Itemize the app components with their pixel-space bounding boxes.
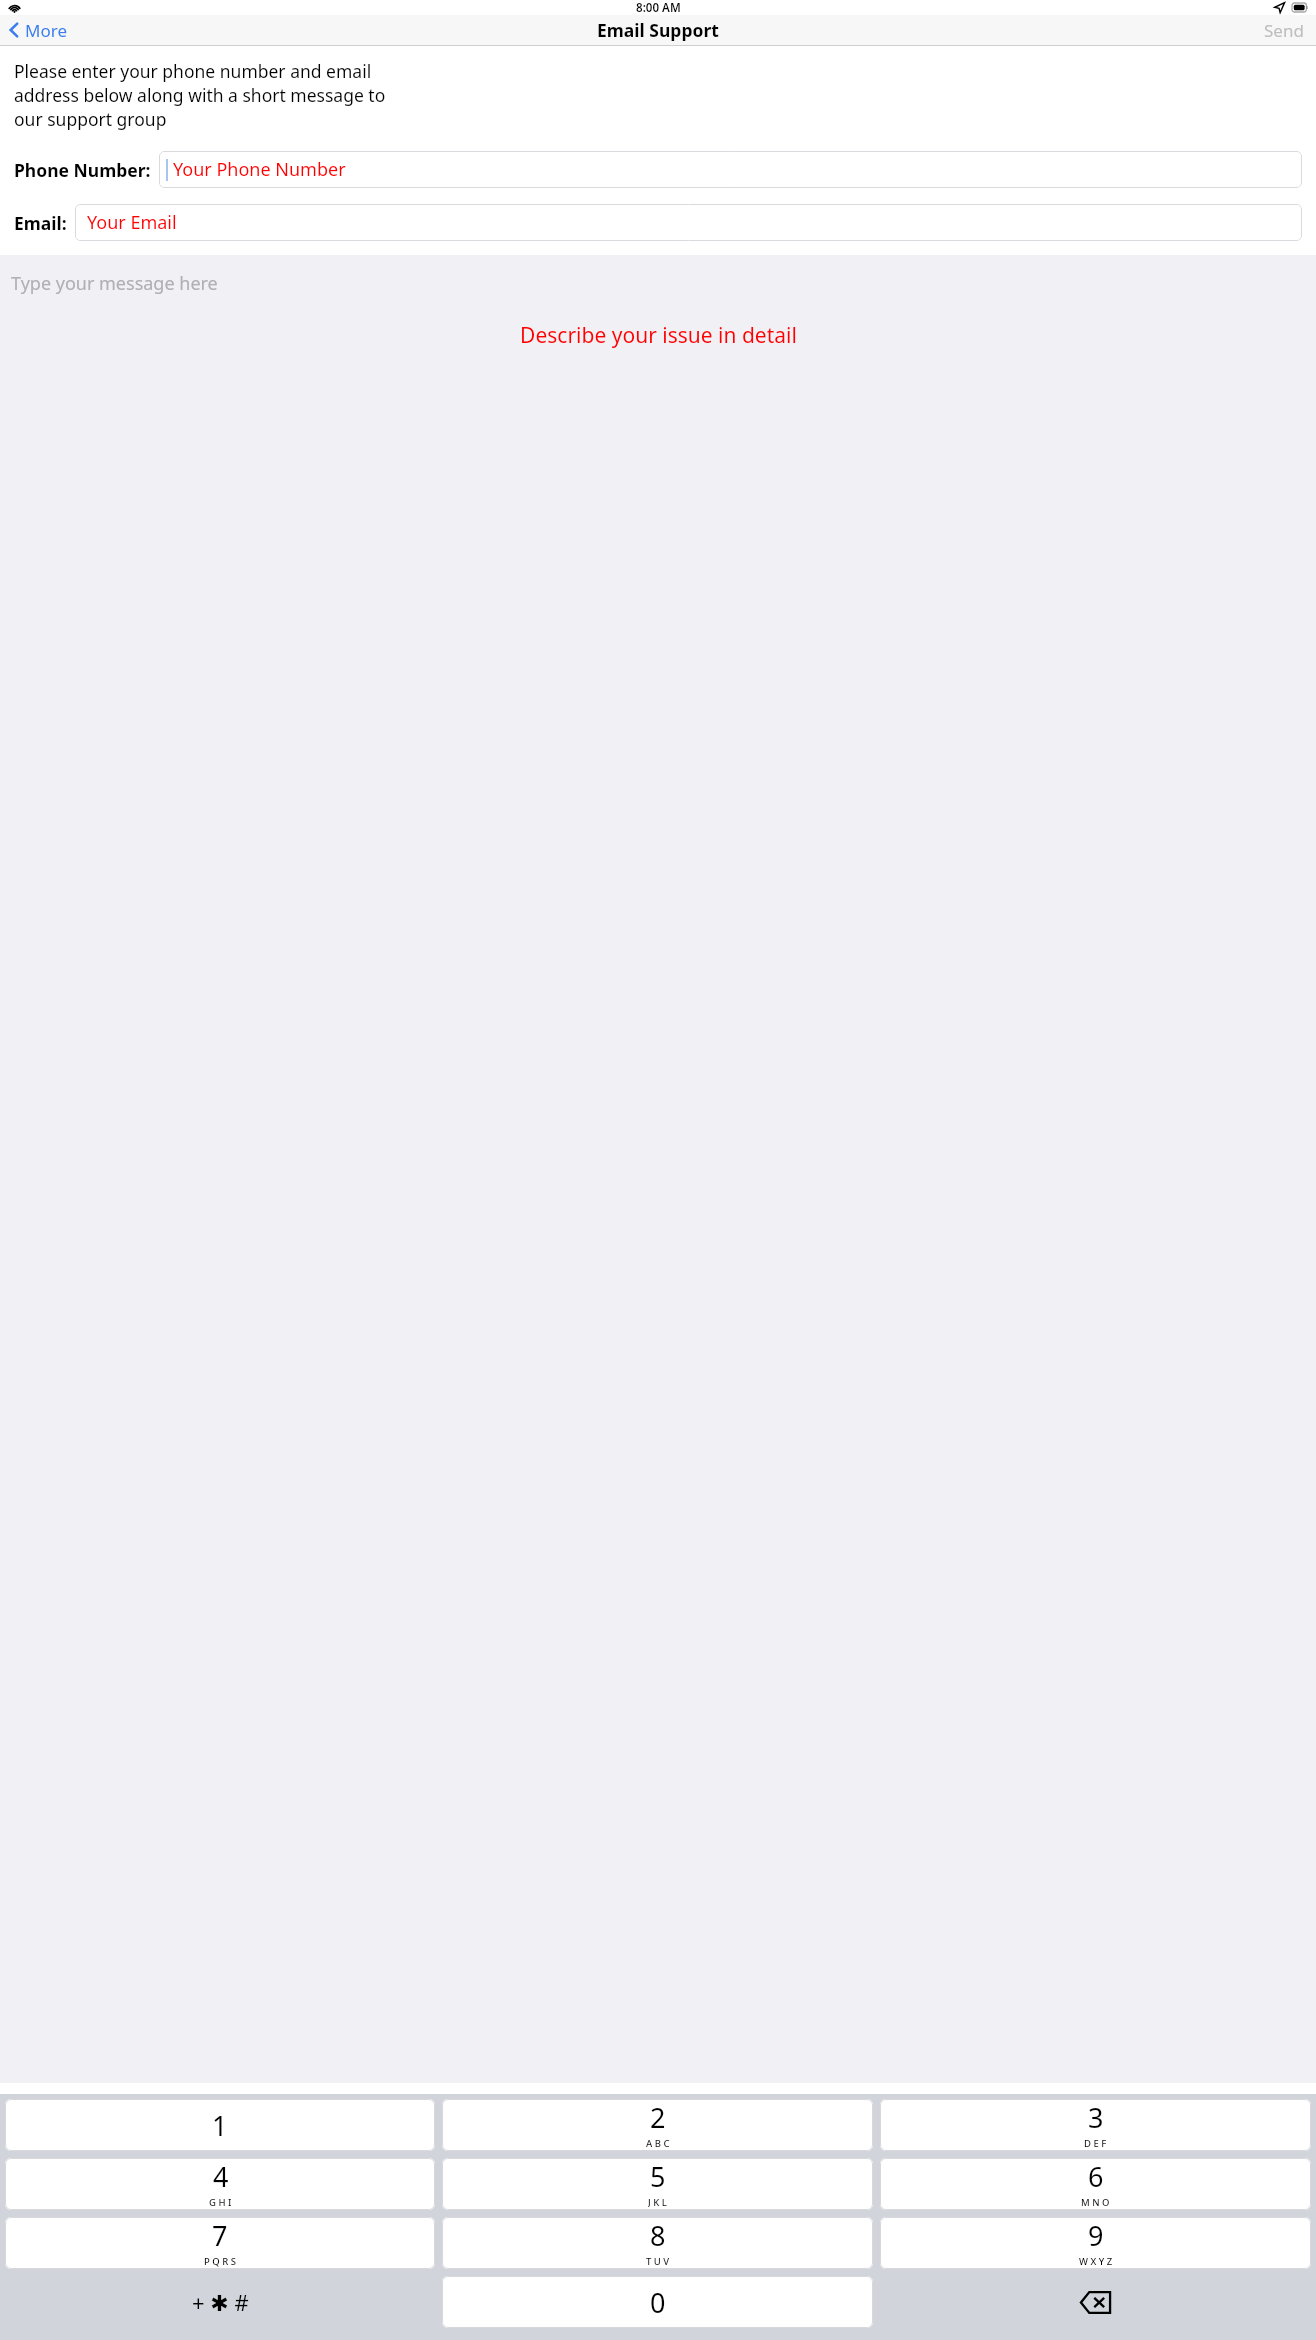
staticText: Describe your issue in detail <box>520 321 797 350</box>
staticText: G H I <box>209 2196 232 2208</box>
staticText: Email Support <box>597 18 719 42</box>
staticText: T U V <box>646 2255 670 2267</box>
button[interactable]: Your Email <box>75 204 1302 241</box>
staticText: M N O <box>1081 2196 1110 2208</box>
staticText: 7 <box>212 2217 228 2254</box>
button[interactable]: + ✱ # <box>5 2276 435 2328</box>
button[interactable]: Send <box>1261 15 1307 45</box>
staticText: More <box>25 19 67 41</box>
staticText: 3 <box>1088 2099 1104 2136</box>
staticText: 8:00 AM <box>636 0 681 15</box>
staticText: 1 <box>212 2107 228 2144</box>
staticText: 8 <box>650 2217 666 2254</box>
staticText: W X Y Z <box>1079 2255 1113 2267</box>
button[interactable]: 8 <box>442 2217 873 2269</box>
button[interactable]: 6 <box>880 2158 1311 2210</box>
button[interactable]: 3 <box>880 2099 1311 2151</box>
staticText: Type your message here <box>11 271 218 296</box>
staticText: 5 <box>650 2158 666 2195</box>
staticText: 4 <box>213 2158 229 2195</box>
staticText: A B C <box>646 2137 670 2149</box>
button[interactable]: 0 <box>442 2276 873 2328</box>
button[interactable]: 2 <box>442 2099 873 2151</box>
button[interactable]: Type your message here <box>0 255 1316 2083</box>
button[interactable]: 5 <box>442 2158 873 2210</box>
staticText: D E F <box>1084 2137 1107 2149</box>
button[interactable]: 9 <box>880 2217 1311 2269</box>
staticText: Please enter your phone number and email… <box>14 59 386 131</box>
staticText: 9 <box>1088 2217 1104 2254</box>
staticText: Your Email <box>87 210 177 235</box>
staticText: + ✱ # <box>192 2287 249 2317</box>
button[interactable]: Your Phone Number <box>159 151 1302 188</box>
button[interactable]: More <box>6 15 70 45</box>
button[interactable]: 7 <box>5 2217 435 2269</box>
button[interactable]: 1 <box>5 2099 435 2151</box>
staticText: Your Phone Number <box>173 157 346 182</box>
staticText: 0 <box>650 2284 666 2321</box>
staticText: Phone Number: <box>14 158 151 182</box>
staticText: P Q R S <box>204 2255 236 2267</box>
staticText: Email: <box>14 211 67 235</box>
staticText: 2 <box>650 2099 666 2136</box>
staticText: J K L <box>648 2196 667 2208</box>
staticText: Send <box>1264 19 1304 41</box>
button[interactable]: Backspace <box>880 2276 1311 2328</box>
staticText: 6 <box>1088 2158 1104 2195</box>
button[interactable]: 4 <box>5 2158 435 2210</box>
